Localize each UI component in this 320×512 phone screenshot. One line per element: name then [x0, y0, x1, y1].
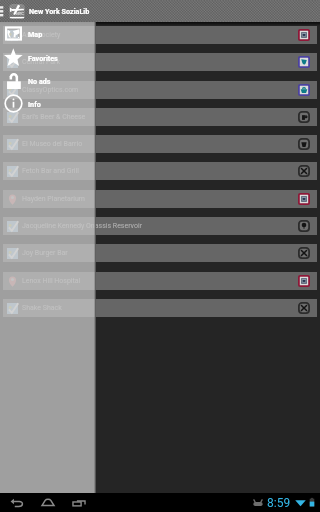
staticText: El Museo del Barrio	[22, 140, 298, 148]
staticText: NYC	[16, 11, 24, 16]
button[interactable]: Category	[298, 29, 310, 41]
button[interactable]: Asia Society	[3, 26, 317, 44]
button[interactable]: Lenox Hill Hospital	[3, 272, 317, 290]
staticText: Lenox Hill Hospital	[22, 277, 298, 285]
staticText: Favorites	[28, 54, 58, 62]
button[interactable]: ClassyOptics.com	[3, 81, 317, 99]
button[interactable]: Category	[298, 165, 310, 177]
button[interactable]: Joy Burger Bar	[3, 244, 317, 262]
button[interactable]: Category	[298, 193, 310, 205]
button[interactable]: Map	[0, 22, 96, 45]
button[interactable]: Open navigation drawer	[0, 0, 8, 22]
button[interactable]: Category	[298, 220, 310, 232]
staticText: Jacqueline Kennedy Onassis Reservoir	[22, 222, 298, 230]
button[interactable]: Category	[298, 302, 310, 314]
staticText: No ads	[28, 77, 51, 85]
button[interactable]: Central Park	[3, 53, 317, 71]
button[interactable]: Hayden Planetarium	[3, 190, 317, 208]
button[interactable]: El Museo del Barrio	[3, 135, 317, 153]
button[interactable]: Category	[298, 275, 310, 287]
staticText: Joy Burger Bar	[22, 249, 298, 257]
staticText: New York SoziaLib	[29, 7, 90, 15]
button[interactable]: Category	[298, 84, 310, 96]
staticText: Info	[28, 100, 41, 108]
button[interactable]: Shake Shack	[3, 299, 317, 317]
staticText: Hayden Planetarium	[22, 195, 298, 203]
staticText: Fetch Bar and Grill	[22, 167, 298, 175]
button[interactable]: Fetch Bar and Grill	[3, 162, 317, 180]
button[interactable]: Jacqueline Kennedy Onassis Reservoir	[3, 217, 317, 235]
button[interactable]: Recent apps	[72, 496, 86, 509]
button[interactable]: Back	[10, 496, 24, 509]
button[interactable]: Category	[298, 56, 310, 68]
staticText: 8:59	[267, 496, 291, 510]
staticText: ClassyOptics.com	[22, 86, 298, 94]
staticText: Earl's Beer & Cheese	[22, 113, 298, 121]
staticText: Map	[28, 30, 43, 38]
button[interactable]: Earl's Beer & Cheese	[3, 108, 317, 126]
button[interactable]: Info	[0, 92, 96, 115]
staticText: Shake Shack	[22, 304, 298, 312]
button[interactable]: Favorites	[0, 46, 96, 69]
button[interactable]: Category	[298, 111, 310, 123]
button[interactable]: Category	[298, 138, 310, 150]
staticText: Central Park	[22, 58, 298, 66]
button[interactable]: No ads	[0, 69, 96, 92]
button[interactable]: Category	[298, 247, 310, 259]
staticText: Asia Society	[22, 31, 298, 39]
button[interactable]: Home	[41, 496, 55, 509]
